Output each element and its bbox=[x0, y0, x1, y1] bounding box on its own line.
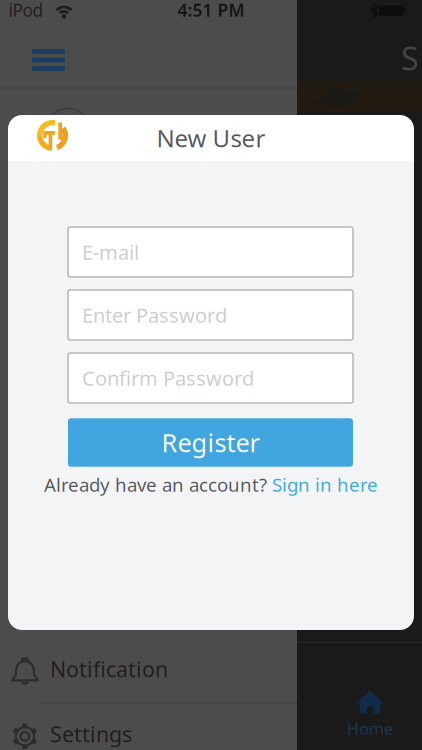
staticText: 4:51 PM bbox=[177, 0, 244, 21]
staticText: Notification bbox=[50, 655, 168, 683]
staticText: Sign in here bbox=[272, 472, 378, 497]
staticText: Home bbox=[347, 718, 393, 739]
button[interactable]: E-mail bbox=[68, 227, 353, 277]
staticText: Already have an account? bbox=[44, 472, 267, 497]
button[interactable]: Settings bbox=[0, 702, 297, 750]
staticText: Enter Password bbox=[82, 302, 227, 328]
staticText: E-mail bbox=[82, 239, 139, 265]
staticText: iPod bbox=[8, 0, 43, 21]
button[interactable]: Register bbox=[68, 418, 353, 467]
button[interactable]: Home bbox=[330, 688, 410, 740]
staticText: Confirm Password bbox=[82, 365, 254, 391]
button[interactable]: Notification bbox=[0, 637, 297, 701]
button[interactable]: Enter Password bbox=[68, 290, 353, 340]
staticText: S bbox=[401, 37, 419, 79]
button[interactable]: Confirm Password bbox=[68, 353, 353, 403]
staticText: New User bbox=[156, 122, 265, 154]
button[interactable]: Sign in here bbox=[272, 472, 378, 497]
staticText: Settings bbox=[50, 720, 132, 748]
button[interactable]: Menu bbox=[26, 41, 70, 79]
staticText: Register bbox=[161, 426, 259, 459]
